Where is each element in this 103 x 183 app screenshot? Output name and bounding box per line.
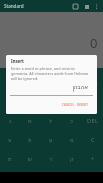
staticText: כ — [70, 118, 73, 124]
button[interactable]: INSERT — [74, 101, 92, 109]
staticText: ה — [70, 98, 74, 104]
button[interactable]: Stop — [81, 1, 92, 12]
button[interactable]: ג — [20, 72, 40, 91]
staticText: ע — [49, 137, 53, 143]
button[interactable]: ע — [40, 130, 61, 149]
button[interactable]: DEL — [82, 72, 103, 91]
button[interactable]: ד — [0, 72, 20, 91]
staticText: ג — [29, 79, 32, 85]
button[interactable]: ל — [40, 111, 61, 130]
button[interactable]: ש — [20, 149, 40, 168]
staticText: Insert — [11, 58, 24, 64]
staticText: נ — [9, 118, 12, 124]
button[interactable]: Save — [70, 1, 81, 12]
staticText: CANCEL — [62, 103, 75, 107]
button[interactable]: ר — [40, 149, 61, 168]
button[interactable]: + — [82, 149, 103, 168]
staticText: ס — [70, 137, 74, 143]
staticText: פ — [28, 137, 32, 143]
staticText: מ — [28, 118, 32, 124]
button[interactable]: Standard — [0, 1, 26, 11]
staticText: DEL — [87, 117, 99, 125]
staticText: Enter a word or phrase, and view its gem… — [11, 66, 89, 81]
staticText: + — [91, 155, 95, 162]
staticText: ש — [28, 156, 32, 162]
staticText: C — [91, 136, 95, 143]
button[interactable]: ז — [20, 91, 40, 110]
staticText: ק — [70, 156, 74, 162]
staticText: 0 — [90, 34, 98, 50]
button[interactable]: ב — [40, 72, 61, 91]
button[interactable]: DEL — [82, 111, 103, 130]
button[interactable]: מ — [20, 111, 40, 130]
button[interactable]: C — [82, 130, 103, 149]
staticText: אהבה — [10, 84, 88, 91]
button[interactable]: ה — [61, 91, 82, 110]
staticText: צ — [8, 137, 12, 143]
staticText: ל — [49, 118, 53, 124]
button[interactable]: ו — [40, 91, 61, 110]
button[interactable]: More options — [92, 2, 101, 11]
button[interactable]: כ — [61, 111, 82, 130]
button[interactable]: ס — [61, 130, 82, 149]
button[interactable]: ת — [0, 149, 20, 168]
button[interactable]: ח — [0, 91, 20, 110]
button[interactable]: צ — [0, 130, 20, 149]
button[interactable]: CANCEL — [59, 101, 78, 109]
staticText: ת — [8, 156, 12, 162]
button[interactable]: C — [82, 91, 103, 110]
button[interactable]: פ — [20, 130, 40, 149]
button[interactable]: א — [61, 72, 82, 91]
staticText: DEL — [87, 78, 99, 86]
staticText: Standard — [4, 3, 24, 9]
staticText: INSERT — [77, 103, 89, 107]
button[interactable]: נ — [0, 111, 20, 130]
staticText: ד — [9, 79, 12, 85]
button[interactable]: ק — [61, 149, 82, 168]
staticText: ר — [49, 156, 53, 162]
